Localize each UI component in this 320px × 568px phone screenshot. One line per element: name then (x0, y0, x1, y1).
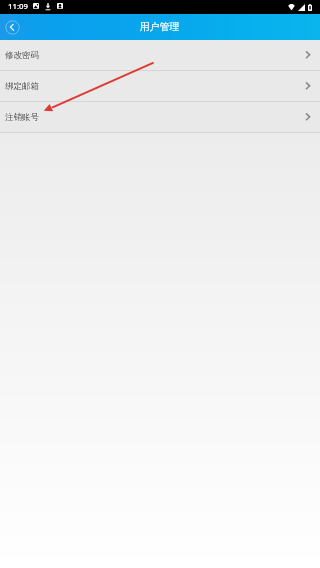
staticText: 注销账号 (5, 112, 39, 123)
staticText: 11:09 (8, 1, 28, 12)
staticText: 绑定邮箱 (5, 81, 39, 92)
button[interactable]: 绑定邮箱 (0, 71, 320, 101)
staticText: 用户管理 (140, 21, 180, 33)
button[interactable]: 修改密码 (0, 40, 320, 70)
button[interactable]: Back (5, 20, 20, 35)
staticText: 修改密码 (5, 50, 39, 61)
button[interactable]: 注销账号 (0, 102, 320, 132)
